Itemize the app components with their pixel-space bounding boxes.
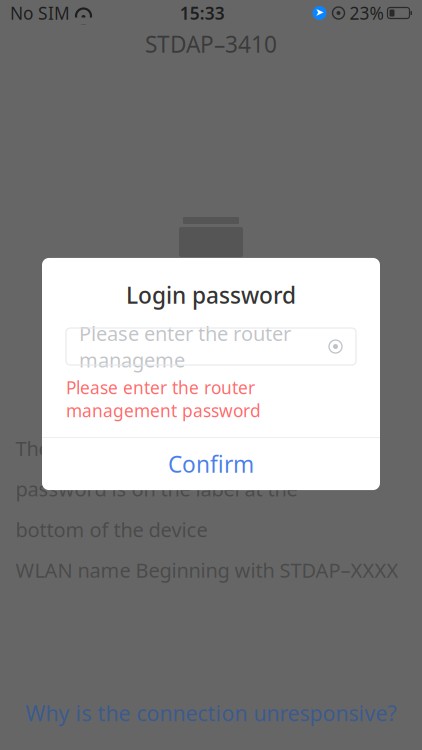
staticText: Please enter the router manageme <box>79 320 291 373</box>
staticText: WLAN name Beginning with STDAP–XXXX <box>15 557 398 583</box>
staticText: Why is the connection unresponsive? <box>25 699 396 727</box>
staticText: 15:33 <box>180 1 225 24</box>
staticText: STDAP–3410 <box>145 29 277 59</box>
staticText: Please enter the router management passw… <box>66 376 261 422</box>
button[interactable]: Please enter the router manageme <box>66 328 356 365</box>
staticText: ➤ <box>315 6 324 18</box>
button[interactable]: Confirm <box>42 438 380 490</box>
staticText: Login password <box>126 280 296 310</box>
staticText: bottom of the device <box>15 516 207 543</box>
staticText: The default router management <box>15 435 312 462</box>
staticText: 23% <box>349 1 383 24</box>
button[interactable]: Why is the connection unresponsive? <box>0 698 422 728</box>
staticText: Confirm <box>168 449 254 479</box>
staticText: No SIM <box>10 1 70 24</box>
staticText: password is on the label at the <box>15 476 297 502</box>
